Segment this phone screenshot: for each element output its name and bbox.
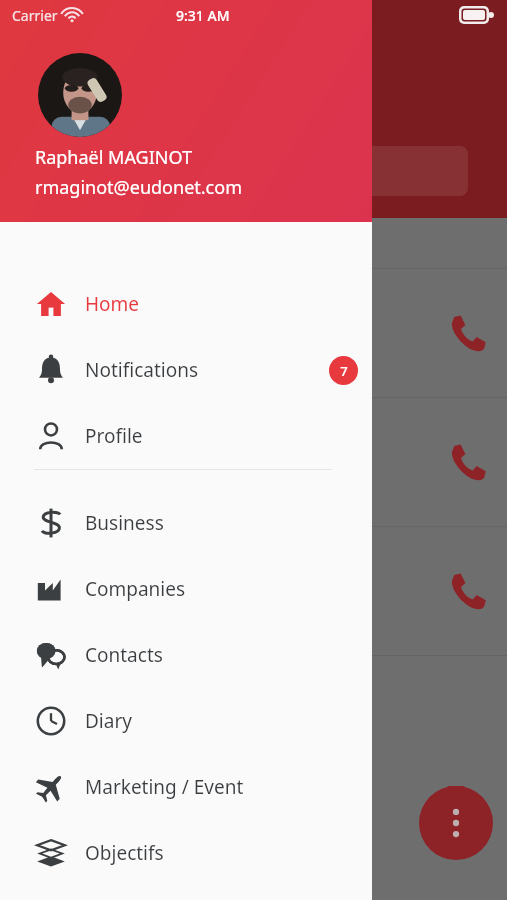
staticText: Companies — [85, 576, 186, 602]
staticText: Objectifs — [85, 840, 164, 866]
staticText: Carrier — [12, 6, 58, 25]
staticText: 9:31 AM — [176, 6, 230, 25]
button[interactable]: Marketing / Event — [0, 754, 372, 820]
staticText: Marketing / Event — [85, 774, 244, 800]
button[interactable]: Business — [0, 490, 372, 556]
button[interactable] — [38, 53, 122, 137]
button[interactable]: Notifications — [0, 337, 372, 403]
staticText: Home — [85, 291, 140, 317]
button[interactable]: Companies — [0, 556, 372, 622]
button[interactable]: Profile — [0, 403, 372, 469]
staticText: Diary — [85, 708, 132, 734]
staticText: Raphaël MAGINOT — [35, 145, 192, 170]
button[interactable] — [0, 269, 507, 397]
button[interactable] — [14, 146, 468, 196]
button[interactable]: Objectifs — [0, 820, 372, 886]
staticText: Notifications — [85, 357, 199, 383]
button[interactable] — [0, 398, 507, 526]
staticText: Business — [85, 510, 164, 536]
button[interactable]: Contacts — [0, 622, 372, 688]
button[interactable]: Diary — [0, 688, 372, 754]
button[interactable]: Home — [0, 271, 372, 337]
staticText: Profile — [85, 423, 143, 449]
staticText: rmaginot@eudonet.com — [35, 175, 242, 200]
staticText: 7 — [340, 362, 348, 380]
staticText: Contacts — [85, 642, 163, 668]
button[interactable]: More options — [419, 786, 493, 860]
button[interactable] — [0, 527, 507, 655]
